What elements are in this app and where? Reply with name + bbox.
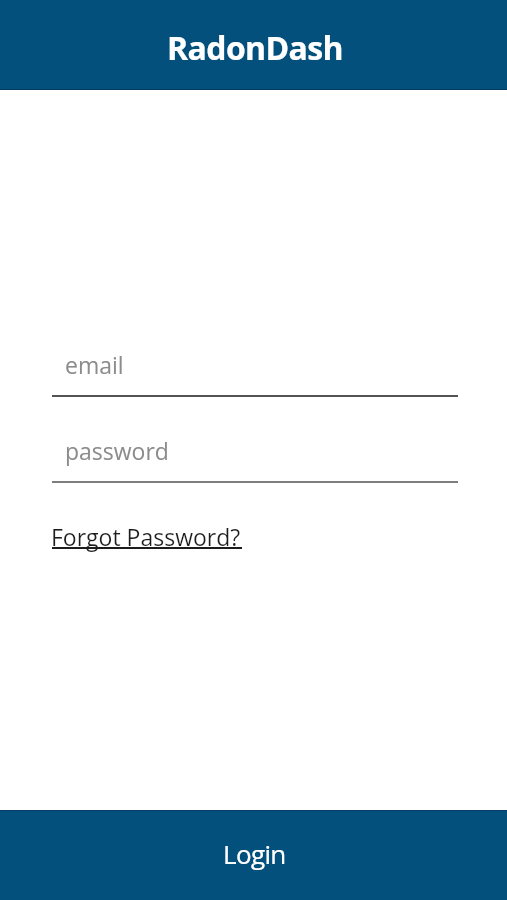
staticText: Forgot Password? <box>51 521 241 552</box>
staticText: Login <box>223 836 286 871</box>
staticText: email <box>65 349 124 380</box>
button[interactable]: Login <box>0 810 507 900</box>
button[interactable]: email <box>52 349 458 397</box>
button[interactable]: Forgot Password? <box>51 518 243 552</box>
button[interactable]: password <box>52 435 458 483</box>
staticText: password <box>65 435 169 466</box>
staticText: RadonDash <box>167 26 344 70</box>
